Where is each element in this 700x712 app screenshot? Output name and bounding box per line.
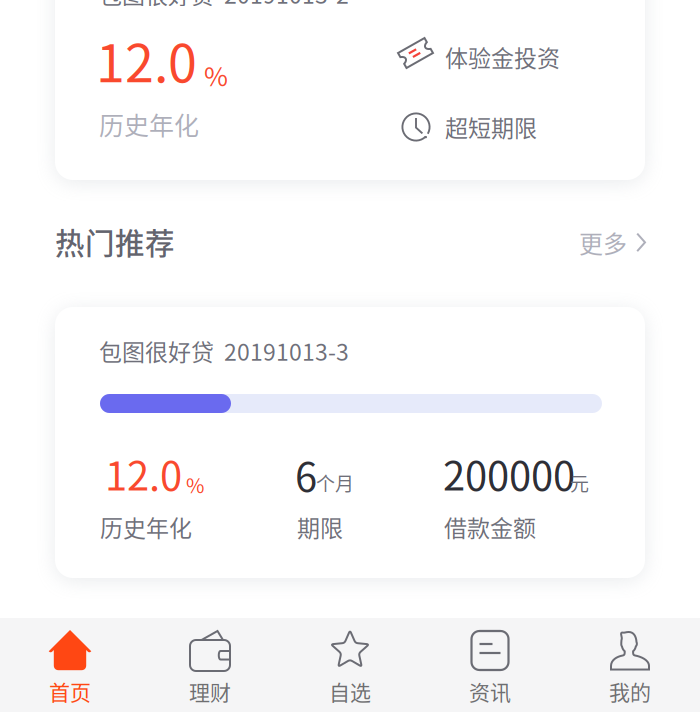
staticText: 超短期限 [445, 110, 537, 143]
button[interactable]: 理财 [140, 618, 280, 712]
staticText: 体验金投资 [445, 40, 560, 73]
staticText: % [204, 56, 228, 94]
button[interactable]: 资讯 [420, 618, 560, 712]
staticText: 12.0 [105, 444, 182, 502]
button[interactable]: 自选 [280, 618, 420, 712]
staticText: 期限 [297, 510, 343, 543]
staticText: 借款金额 [444, 510, 536, 543]
staticText: 历史年化 [100, 510, 192, 543]
staticText: 我的 [609, 676, 651, 706]
staticText: 首页 [49, 676, 91, 706]
staticText: % [186, 470, 204, 499]
staticText: 理财 [189, 676, 231, 706]
staticText: 包图很好贷 20191013-3 [99, 334, 349, 367]
staticText: 6 [295, 445, 317, 503]
staticText: 历史年化 [99, 106, 199, 142]
staticText: 自选 [329, 676, 371, 706]
staticText: 包图很好贷 20191013-2 [99, 0, 349, 10]
staticText: 12.0 [96, 22, 197, 97]
button[interactable]: 更多 [571, 215, 655, 270]
button[interactable]: 首页 [0, 618, 140, 712]
staticText: 热门推荐 [55, 220, 175, 263]
staticText: 200000 [443, 444, 575, 502]
staticText: 个月 [316, 469, 354, 496]
staticText: 资讯 [469, 676, 511, 706]
button[interactable]: 我的 [560, 618, 700, 712]
staticText: 更多 [579, 225, 627, 260]
staticText: 元 [570, 469, 589, 496]
